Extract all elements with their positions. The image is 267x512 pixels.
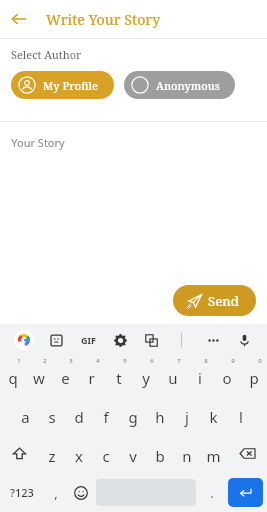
- button[interactable]: m: [200, 434, 227, 473]
- button[interactable]: My Profile: [11, 71, 114, 99]
- staticText: d: [74, 407, 84, 427]
- button[interactable]: Enter: [228, 478, 263, 507]
- staticText: y: [142, 368, 150, 388]
- staticText: j: [185, 407, 189, 427]
- staticText: Select Author: [11, 47, 82, 62]
- button[interactable]: h: [146, 395, 173, 434]
- button[interactable]: 5: [105, 356, 132, 395]
- button[interactable]: 0: [240, 356, 267, 395]
- staticText: Your Story: [11, 135, 65, 150]
- button[interactable]: g: [119, 395, 146, 434]
- button[interactable]: d: [65, 395, 92, 434]
- staticText: o: [222, 368, 232, 388]
- button[interactable]: Stickers: [45, 329, 67, 351]
- button[interactable]: 6: [132, 356, 159, 395]
- staticText: g: [128, 407, 138, 427]
- button[interactable]: z: [39, 434, 65, 473]
- button[interactable]: 8: [186, 356, 213, 395]
- button[interactable]: Emoji: [68, 473, 93, 512]
- staticText: My Profile: [43, 78, 99, 93]
- button[interactable]: a: [12, 395, 38, 434]
- staticText: w: [33, 368, 45, 388]
- button[interactable]: Backspace: [227, 434, 267, 473]
- button[interactable]: 3: [52, 356, 78, 395]
- staticText: u: [168, 368, 178, 388]
- staticText: 6: [150, 357, 154, 365]
- staticText: 7: [177, 357, 181, 365]
- button[interactable]: Google: [14, 330, 34, 350]
- staticText: 3: [69, 357, 73, 365]
- staticText: Send: [208, 292, 239, 310]
- staticText: f: [103, 407, 109, 427]
- button[interactable]: 9: [213, 356, 240, 395]
- staticText: k: [209, 407, 218, 427]
- button[interactable]: 1: [0, 356, 26, 395]
- button[interactable]: Settings: [109, 329, 131, 351]
- button[interactable]: Shift: [0, 434, 39, 473]
- staticText: ,: [54, 484, 58, 502]
- button[interactable]: v: [119, 434, 146, 473]
- button[interactable]: 7: [159, 356, 186, 395]
- button[interactable]: s: [38, 395, 65, 434]
- button[interactable]: Send: [173, 285, 256, 316]
- button[interactable]: 2: [26, 356, 52, 395]
- staticText: r: [88, 368, 95, 388]
- staticText: 5: [123, 357, 127, 365]
- staticText: .: [210, 484, 214, 502]
- button[interactable]: c: [92, 434, 119, 473]
- staticText: e: [61, 368, 70, 388]
- button[interactable]: j: [173, 395, 200, 434]
- staticText: i: [198, 368, 202, 388]
- button[interactable]: ?123: [0, 473, 43, 512]
- staticText: Write Your Story: [46, 10, 161, 29]
- button[interactable]: ,: [43, 473, 68, 512]
- button[interactable]: x: [65, 434, 92, 473]
- staticText: 4: [96, 357, 100, 365]
- staticText: b: [155, 446, 165, 466]
- staticText: Anonymous: [156, 78, 220, 93]
- staticText: n: [182, 446, 192, 466]
- staticText: t: [116, 368, 122, 388]
- staticText: s: [48, 407, 56, 427]
- staticText: l: [239, 407, 243, 427]
- staticText: ?123: [10, 485, 34, 500]
- staticText: m: [206, 446, 221, 466]
- staticText: h: [155, 407, 165, 427]
- staticText: p: [249, 368, 259, 388]
- button[interactable]: l: [227, 395, 254, 434]
- button[interactable]: Translate: [140, 329, 162, 351]
- staticText: v: [129, 446, 137, 466]
- staticText: 9: [231, 357, 235, 365]
- button[interactable]: Back: [0, 0, 38, 38]
- staticText: z: [48, 446, 56, 466]
- button[interactable]: Voice input: [233, 329, 255, 351]
- staticText: x: [75, 446, 83, 466]
- staticText: 0: [258, 357, 262, 365]
- button[interactable]: Anonymous: [124, 71, 235, 99]
- staticText: 1: [17, 357, 21, 365]
- button[interactable]: f: [92, 395, 119, 434]
- button[interactable]: 4: [78, 356, 105, 395]
- staticText: 8: [204, 357, 208, 365]
- staticText: 2: [43, 357, 47, 365]
- staticText: a: [21, 407, 30, 427]
- button[interactable]: k: [200, 395, 227, 434]
- button[interactable]: More options: [202, 329, 224, 351]
- staticText: q: [8, 368, 18, 388]
- staticText: GIF: [81, 334, 96, 346]
- button[interactable]: b: [146, 434, 173, 473]
- staticText: c: [102, 446, 110, 466]
- button[interactable]: .: [199, 473, 224, 512]
- button[interactable]: n: [173, 434, 200, 473]
- button[interactable]: GIF: [81, 334, 96, 346]
